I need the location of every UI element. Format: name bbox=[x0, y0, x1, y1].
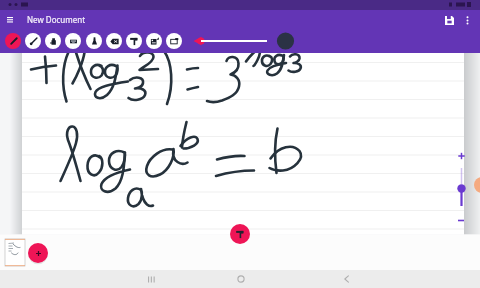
button[interactable]: Delete bbox=[106, 29, 122, 53]
button[interactable]: Highlighter bbox=[86, 29, 102, 53]
button[interactable]: Finger draw bbox=[45, 29, 61, 53]
button[interactable]: Back bbox=[337, 270, 355, 288]
button[interactable]: Pen bbox=[5, 29, 21, 53]
button[interactable]: Menu bbox=[0, 10, 19, 29]
button[interactable]: Eraser bbox=[65, 29, 81, 53]
button[interactable]: Recents bbox=[142, 270, 160, 288]
button[interactable]: Home bbox=[232, 270, 250, 288]
button[interactable]: More options bbox=[458, 11, 476, 29]
button[interactable]: Save bbox=[440, 11, 458, 29]
button[interactable]: Shape bbox=[166, 29, 182, 53]
button[interactable]: Brush bbox=[25, 29, 41, 53]
button[interactable]: Image bbox=[146, 29, 162, 53]
button[interactable]: Text tool bbox=[230, 224, 250, 244]
button[interactable]: Text bbox=[126, 29, 142, 53]
staticText: New Document bbox=[27, 14, 86, 25]
button[interactable]: Page thumbnail bbox=[5, 239, 25, 266]
button[interactable]: Add page bbox=[28, 243, 48, 263]
